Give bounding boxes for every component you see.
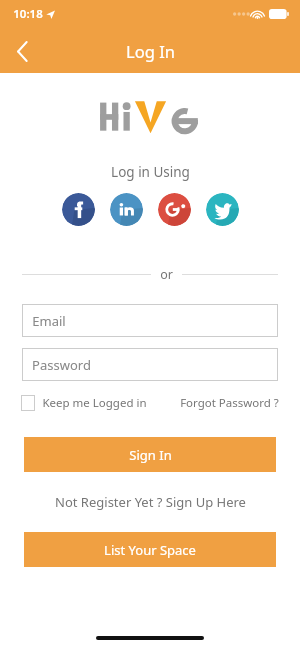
staticText: Sign In	[129, 446, 172, 464]
button[interactable]: Forgot Password ?	[180, 395, 279, 411]
button[interactable]: Email	[22, 304, 278, 337]
button[interactable]: Keep me Logged in	[21, 395, 147, 411]
staticText: 10:18	[13, 6, 43, 22]
button[interactable]: Google Plus	[158, 193, 191, 226]
staticText: Email	[32, 312, 66, 330]
staticText: Not Register Yet ? Sign Up Here	[55, 493, 246, 511]
button[interactable]: LinkedIn	[110, 193, 143, 226]
button[interactable]: List Your Space	[24, 532, 276, 567]
staticText: or	[160, 266, 173, 283]
button[interactable]: Sign In	[24, 437, 276, 472]
staticText: Forgot Password ?	[180, 395, 279, 411]
staticText: Keep me Logged in	[42, 395, 147, 411]
button[interactable]: Facebook	[62, 193, 95, 226]
button[interactable]: Back	[0, 29, 44, 73]
staticText: Log In	[126, 40, 175, 62]
button[interactable]: Not Register Yet ? Sign Up Here	[55, 493, 246, 511]
staticText: List Your Space	[104, 541, 196, 559]
staticText: Log in Using	[111, 163, 190, 181]
staticText: Password	[32, 356, 91, 374]
button[interactable]: Twitter	[206, 193, 239, 226]
button[interactable]: Password	[22, 348, 278, 381]
